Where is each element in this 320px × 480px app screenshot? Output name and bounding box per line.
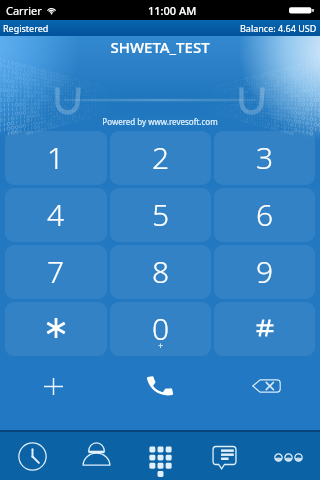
staticText: Registered [3, 22, 49, 34]
button[interactable]: 4 [5, 188, 107, 242]
button[interactable]: Call [106, 356, 213, 416]
button[interactable]: 9 [214, 245, 315, 299]
staticText: 11:00 AM [148, 3, 197, 18]
button[interactable]: 1 [5, 131, 107, 185]
button[interactable]: 7 [5, 245, 107, 299]
button[interactable] [5, 302, 107, 356]
button[interactable]: More [256, 432, 320, 480]
button[interactable]: 8 [110, 245, 211, 299]
button[interactable]: Add contact [0, 356, 106, 416]
button[interactable] [214, 302, 315, 356]
button[interactable]: Backspace [213, 356, 320, 416]
button[interactable]: Dial pad [128, 432, 192, 480]
button[interactable]: Messages [192, 432, 256, 480]
button[interactable]: Contacts [64, 432, 128, 480]
staticText: 9 [256, 251, 274, 292]
staticText: Carrier [6, 3, 42, 18]
staticText: + [158, 339, 164, 351]
button[interactable]: 0 [110, 302, 211, 356]
staticText: Powered by www.revesoft.com [102, 116, 218, 127]
button[interactable]: 2 [110, 131, 211, 185]
staticText: SHWETA_TEST [110, 37, 210, 57]
button[interactable]: Recent calls [0, 432, 64, 480]
staticText: 4 [47, 194, 65, 235]
staticText: 7 [47, 251, 65, 292]
staticText: 5 [152, 194, 170, 235]
button[interactable]: 6 [214, 188, 315, 242]
staticText: 3 [256, 137, 274, 178]
staticText: 8 [152, 251, 170, 292]
button[interactable]: 5 [110, 188, 211, 242]
staticText: Balance: 4.64 USD [240, 22, 317, 34]
button[interactable]: 3 [214, 131, 315, 185]
staticText: 2 [152, 137, 170, 178]
staticText: 0 [152, 308, 170, 349]
staticText: 6 [256, 194, 274, 235]
staticText: 1 [47, 137, 65, 178]
